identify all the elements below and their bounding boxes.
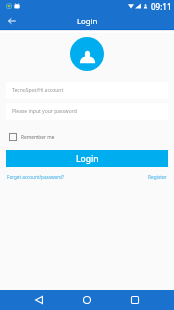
button[interactable]: Back — [29, 290, 49, 310]
button[interactable]: Avatar — [70, 37, 104, 71]
staticText: 09:11 — [151, 1, 172, 12]
staticText: TecnoSpot/Hi account — [12, 87, 64, 94]
button[interactable]: Register — [148, 174, 167, 181]
button[interactable]: Login — [6, 150, 168, 167]
staticText: Please input your password — [12, 108, 77, 115]
staticText: Login — [76, 153, 99, 165]
button[interactable]: Back — [4, 13, 20, 29]
button[interactable]: Please input your password — [6, 103, 168, 120]
staticText: Login — [77, 16, 98, 27]
button[interactable]: Home — [77, 290, 97, 310]
button[interactable]: Forget account/password? — [7, 174, 64, 180]
button[interactable]: Recent apps — [125, 290, 145, 310]
button[interactable]: Remember me — [9, 133, 55, 141]
button[interactable]: TecnoSpot/Hi account — [6, 82, 168, 99]
staticText: Remember me — [21, 134, 55, 141]
